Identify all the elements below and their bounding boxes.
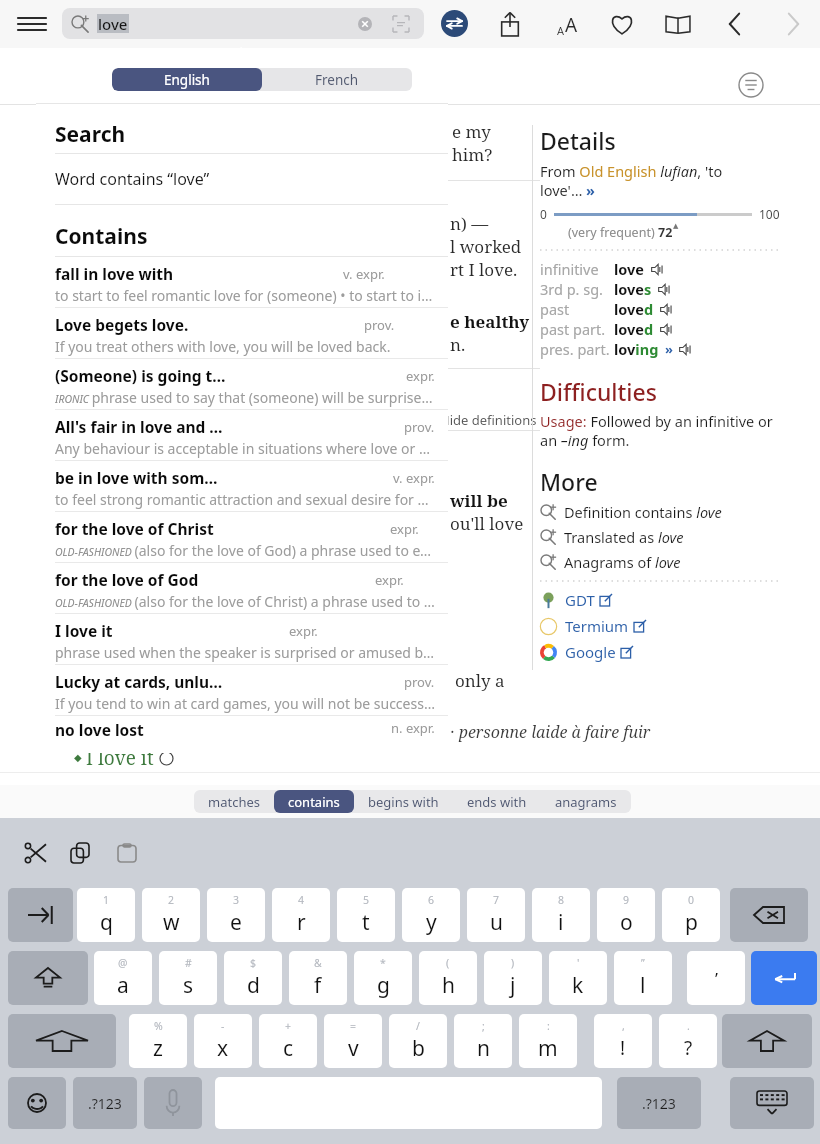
button[interactable]: 5 xyxy=(337,888,395,942)
button[interactable]: matches xyxy=(194,790,274,813)
staticText: anagrams xyxy=(555,793,617,811)
button[interactable]: .?123 xyxy=(617,1077,701,1129)
button[interactable]: 1 xyxy=(77,888,135,942)
button[interactable]: ; xyxy=(454,1014,512,1068)
staticText: matches xyxy=(208,793,260,811)
staticText: .?123 xyxy=(88,1094,122,1113)
button[interactable]: ” xyxy=(614,951,672,1005)
button[interactable]: French xyxy=(262,68,412,91)
button[interactable]: ( xyxy=(419,951,477,1005)
button[interactable]: 2 xyxy=(142,888,200,942)
button[interactable]: Shift xyxy=(722,1014,812,1068)
button[interactable]: * xyxy=(354,951,412,1005)
button[interactable]: Hide keyboard xyxy=(730,1077,814,1129)
button[interactable]: Copy xyxy=(64,836,98,870)
button[interactable]: / xyxy=(389,1014,447,1068)
button[interactable]: ends with xyxy=(453,790,541,813)
staticText: OLD-FASHIONED (also for the love of Chri… xyxy=(55,592,435,611)
staticText: # xyxy=(185,956,192,970)
staticText: ' xyxy=(577,956,580,970)
button[interactable]: anagrams xyxy=(541,790,631,813)
staticText: = xyxy=(350,1019,357,1033)
staticText: : xyxy=(547,1019,550,1033)
button[interactable]: 4 xyxy=(272,888,330,942)
button[interactable]: , xyxy=(594,1014,652,1068)
button[interactable]: - xyxy=(194,1014,252,1068)
button[interactable]: be in love with someone xyxy=(36,461,448,511)
button[interactable]: Translated as love xyxy=(540,524,780,549)
button[interactable]: : xyxy=(519,1014,577,1068)
staticText: r xyxy=(297,908,306,937)
button[interactable]: Termium xyxy=(540,613,780,639)
button[interactable]: Paste xyxy=(110,836,144,870)
button[interactable]: Emoji xyxy=(8,1077,66,1129)
button[interactable]: Shift xyxy=(8,1014,116,1068)
button[interactable]: Return xyxy=(751,951,817,1005)
button[interactable]: English xyxy=(112,68,262,91)
button[interactable]: GDT xyxy=(540,587,780,613)
button[interactable]: Forward xyxy=(780,11,806,37)
button[interactable]: & xyxy=(289,951,347,1005)
button[interactable]: fall in love with xyxy=(36,257,448,307)
staticText: Word contains “love” xyxy=(55,168,210,190)
button[interactable]: $ xyxy=(224,951,282,1005)
button[interactable]: 8 xyxy=(532,888,590,942)
button[interactable]: Word contains “love” xyxy=(36,154,448,204)
staticText: (Someone) is going to love (something). xyxy=(55,365,230,386)
button[interactable]: = xyxy=(324,1014,382,1068)
button[interactable]: Share xyxy=(497,11,523,37)
staticText: I love it xyxy=(55,620,113,641)
button[interactable]: Back xyxy=(722,11,748,37)
button[interactable]: Tab xyxy=(8,888,73,942)
staticText: to feel strong romantic attraction and s… xyxy=(55,490,435,509)
staticText: (very frequent) xyxy=(568,224,658,241)
button[interactable]: Anagrams of love xyxy=(540,549,780,574)
button[interactable]: 9 xyxy=(597,888,655,942)
button[interactable]: @ xyxy=(94,951,152,1005)
button[interactable]: # xyxy=(159,951,217,1005)
button[interactable]: + xyxy=(259,1014,317,1068)
button[interactable]: Google xyxy=(540,639,780,665)
staticText: If you treat others with love, you will … xyxy=(55,337,391,356)
button[interactable]: Display options xyxy=(738,72,764,98)
button[interactable]: Cut xyxy=(18,836,52,870)
button[interactable]: .?123 xyxy=(73,1077,137,1129)
button[interactable]: contains xyxy=(274,790,354,813)
button[interactable]: love xyxy=(62,8,424,39)
button[interactable]: All's fair in love and war. xyxy=(36,410,448,460)
button[interactable]: for the love of God xyxy=(36,563,448,613)
button[interactable]: Definition contains love xyxy=(540,499,780,524)
button[interactable]: Menu xyxy=(18,12,46,36)
staticText: GDT xyxy=(565,590,595,610)
button[interactable]: Dictation xyxy=(144,1077,202,1129)
button[interactable]: ’ xyxy=(687,951,745,1005)
button[interactable]: ' xyxy=(549,951,607,1005)
staticText: Anagrams of love xyxy=(564,552,681,572)
button[interactable]: for the love of Christ xyxy=(36,512,448,562)
button[interactable]: (Someone) is going to love (something). xyxy=(36,359,448,409)
button[interactable]: 6 xyxy=(402,888,460,942)
staticText: Love begets love. xyxy=(55,314,189,335)
button[interactable]: 0 xyxy=(662,888,720,942)
staticText: e healthy xyxy=(450,310,530,333)
button[interactable]: Caps lock xyxy=(8,951,88,1005)
button[interactable]: begins with xyxy=(354,790,453,813)
button[interactable]: % xyxy=(129,1014,187,1068)
button[interactable]: Favorite xyxy=(609,11,635,37)
button[interactable]: . xyxy=(659,1014,717,1068)
button[interactable]: 3 xyxy=(207,888,265,942)
staticText: * xyxy=(380,956,386,970)
button[interactable]: Lucky at cards, unlucky in love. xyxy=(36,665,448,715)
button[interactable]: ) xyxy=(484,951,542,1005)
button[interactable]: I love it xyxy=(36,614,448,664)
button[interactable]: Text size xyxy=(552,10,582,40)
staticText: English xyxy=(164,71,210,89)
button[interactable]: Bookmarks xyxy=(665,11,691,37)
staticText: will be xyxy=(450,489,508,512)
button[interactable]: Love begets love. xyxy=(36,308,448,358)
button[interactable]: 7 xyxy=(467,888,525,942)
button[interactable]: Backspace xyxy=(730,888,808,942)
button[interactable]: Swap languages xyxy=(441,10,468,37)
button[interactable]: no love lost xyxy=(36,716,448,740)
